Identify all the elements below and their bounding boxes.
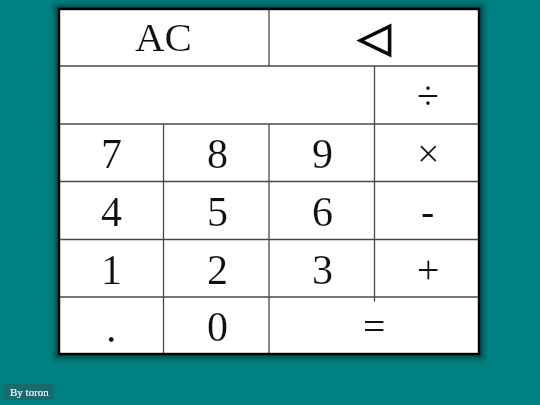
staticText: × bbox=[417, 131, 440, 175]
staticText: - bbox=[421, 189, 435, 233]
staticText: AC bbox=[135, 14, 192, 59]
staticText: 4 bbox=[101, 189, 122, 236]
staticText: 1 bbox=[101, 247, 122, 294]
staticText: . bbox=[106, 305, 117, 352]
staticText: ÷ bbox=[417, 73, 439, 117]
staticText: 2 bbox=[207, 247, 228, 294]
staticText: By toron bbox=[10, 386, 49, 398]
staticText: + bbox=[417, 247, 440, 291]
staticText: 6 bbox=[312, 189, 333, 236]
staticText: 5 bbox=[207, 189, 228, 236]
staticText: 8 bbox=[207, 131, 228, 178]
staticText: 0 bbox=[207, 304, 228, 351]
staticText: 3 bbox=[312, 247, 333, 294]
staticText: = bbox=[363, 304, 386, 348]
staticText: 9 bbox=[312, 131, 333, 178]
staticText: 7 bbox=[101, 131, 122, 178]
